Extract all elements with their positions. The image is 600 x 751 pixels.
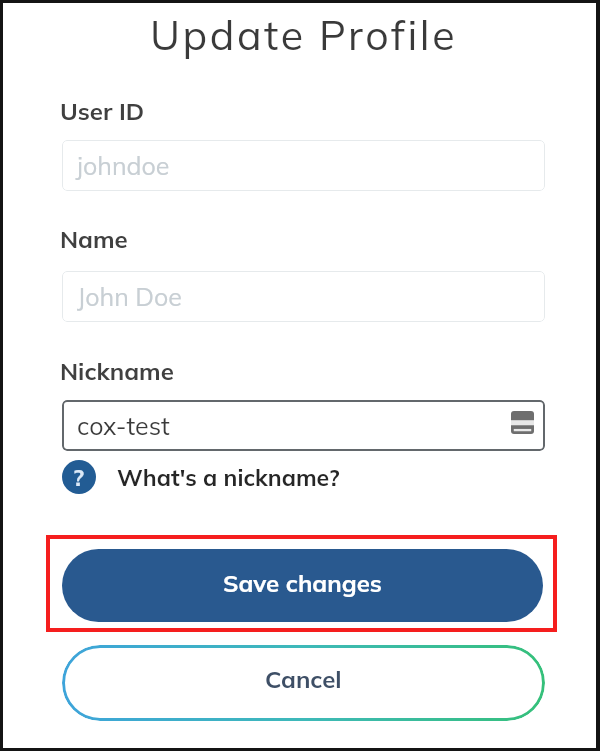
staticText: Name [60,224,128,254]
staticText: Update Profile [7,9,600,60]
staticText: Cancel [265,664,342,694]
staticText: Nickname [60,356,174,386]
button[interactable]: cox-test [62,400,545,451]
staticText: John Doe [77,281,182,312]
button[interactable]: Show keyboard [511,410,534,434]
staticText: cox-test [77,410,170,441]
button[interactable]: johndoe [62,140,545,191]
staticText: User ID [60,96,145,126]
button[interactable]: Cancel [62,645,545,721]
button[interactable]: ? [62,460,340,494]
button[interactable]: John Doe [62,271,545,322]
staticText: Save changes [223,568,382,598]
staticText: johndoe [77,150,170,181]
button[interactable]: Save changes [62,549,543,622]
staticText: What's a nickname? [117,463,340,492]
staticText: ? [73,462,85,492]
